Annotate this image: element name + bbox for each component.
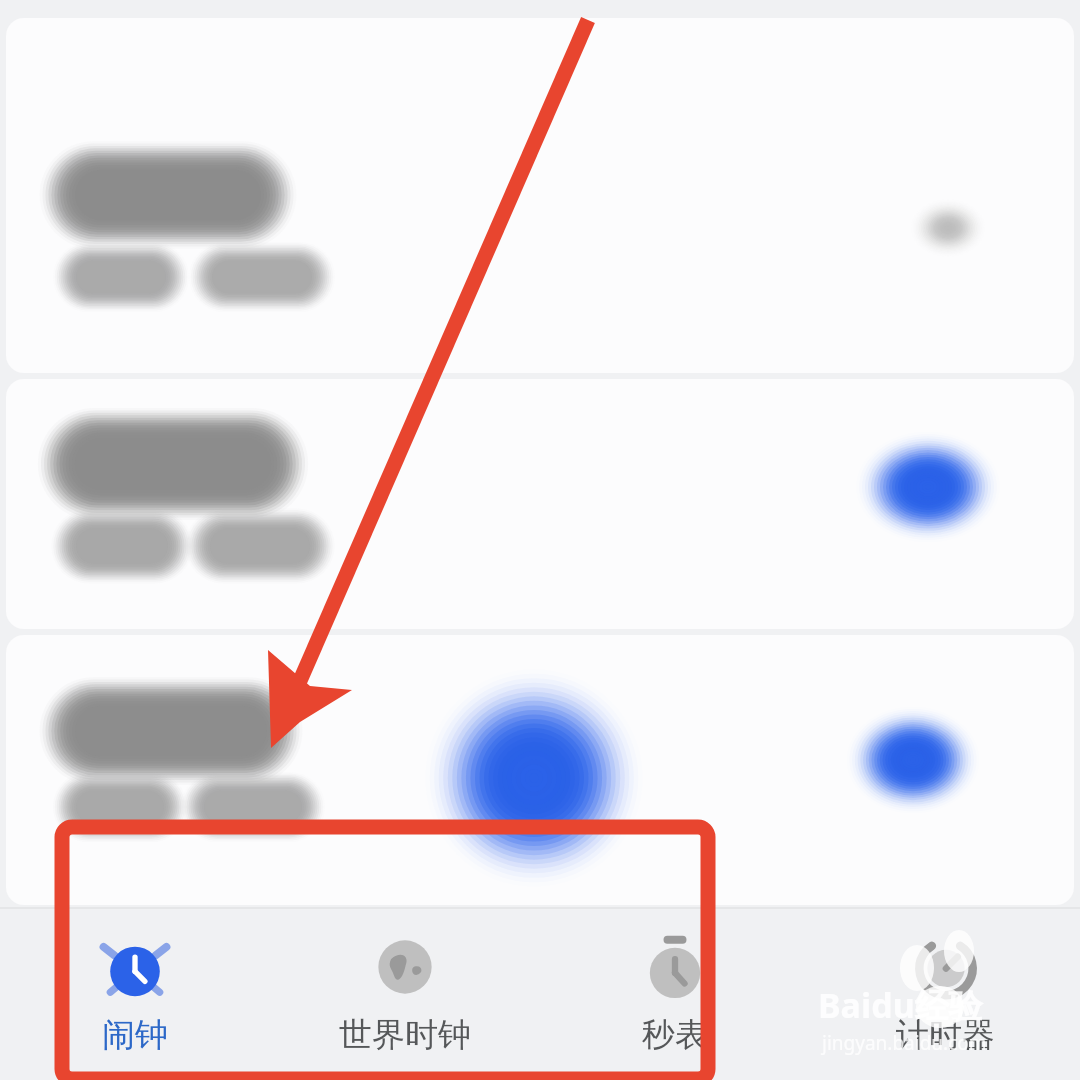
staticText: 秒表	[642, 1014, 708, 1056]
button[interactable]: 世界时钟	[270, 930, 540, 1056]
staticText: 闹钟	[102, 1014, 168, 1056]
staticText: jingyan.baidu.com	[822, 1030, 987, 1056]
staticText: 计时器	[896, 1014, 995, 1056]
button[interactable]	[6, 18, 1074, 373]
button[interactable]: 闹钟	[0, 930, 270, 1056]
button[interactable]	[6, 379, 1074, 629]
button[interactable]	[6, 635, 1074, 905]
button[interactable]: 计时器	[810, 930, 1080, 1056]
button[interactable]: 秒表	[540, 930, 810, 1056]
staticText: Baidu经验	[818, 982, 983, 1028]
staticText: 世界时钟	[339, 1014, 471, 1056]
